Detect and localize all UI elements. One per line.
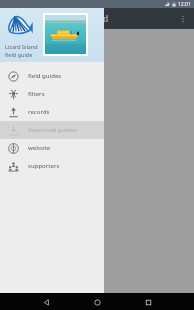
staticText: Explore the field — [46, 13, 109, 24]
staticText: records — [28, 108, 50, 116]
button[interactable]: Lizard Island — [0, 8, 104, 62]
staticText: download guides — [28, 126, 78, 134]
button[interactable]: filters — [0, 85, 104, 103]
staticText: field guides — [28, 72, 62, 80]
button[interactable]: Lizard Island photo — [45, 15, 86, 54]
staticText: supporters — [28, 162, 60, 170]
button[interactable]: Back — [38, 294, 54, 310]
button[interactable]: website — [0, 139, 104, 157]
staticText: website — [28, 144, 51, 152]
button[interactable]: records — [0, 103, 104, 121]
button[interactable]: Home — [89, 294, 105, 310]
staticText: field guide — [5, 51, 33, 58]
button[interactable]: supporters — [0, 157, 104, 175]
button[interactable]: field guides — [0, 67, 104, 85]
button[interactable]: download guides — [0, 121, 104, 139]
staticText: Lizard Island — [5, 43, 38, 50]
button[interactable]: Recent apps — [140, 294, 156, 310]
staticText: filters — [28, 90, 45, 98]
staticText: 12:01 — [178, 1, 191, 8]
button[interactable]: More options — [174, 10, 192, 28]
